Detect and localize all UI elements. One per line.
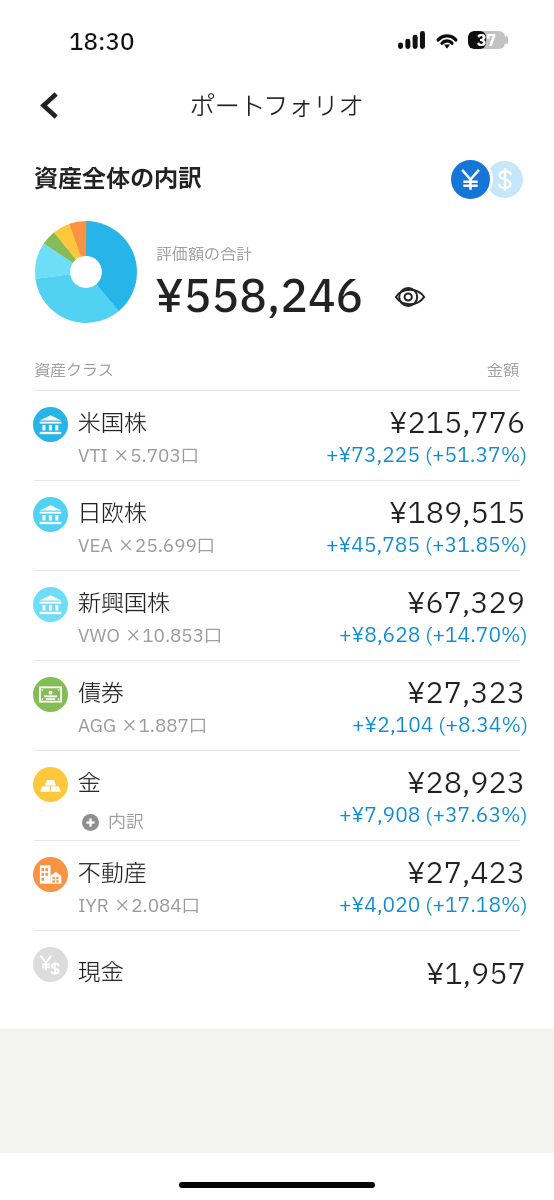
staticText: 資産クラス	[34, 359, 114, 383]
staticText: ¥189,515	[389, 492, 526, 535]
staticText: 評価額の合計	[156, 243, 253, 267]
staticText: 現金	[78, 956, 124, 990]
button[interactable]: 米国株	[0, 391, 554, 480]
button[interactable]: Toggle balance visibility	[390, 282, 430, 312]
staticText: ¥215,776	[389, 402, 526, 445]
button[interactable]: 債券	[0, 661, 554, 750]
staticText: +¥4,020 (+17.18%)	[339, 891, 528, 921]
staticText: ¥67,329	[407, 582, 526, 625]
staticText: ポートフォリオ	[190, 89, 364, 126]
button[interactable]: 不動産	[0, 841, 554, 930]
staticText: +¥8,628 (+14.70%)	[339, 621, 528, 651]
staticText: 内訳	[108, 809, 144, 836]
staticText: 米国株	[78, 407, 147, 441]
staticText: +¥2,104 (+8.34%)	[352, 711, 528, 741]
staticText: ¥27,423	[407, 852, 526, 895]
staticText: IYR ×2.084口	[78, 893, 200, 920]
staticText: 債券	[78, 677, 124, 711]
button[interactable]: Switch to JPY	[451, 160, 490, 199]
staticText: 資産全体の内訳	[34, 162, 202, 198]
staticText: VWO ×10.853口	[78, 623, 223, 650]
staticText: 18:30	[69, 26, 135, 60]
staticText: +¥45,785 (+31.85%)	[326, 531, 528, 561]
button[interactable]: 金	[0, 751, 554, 840]
button[interactable]: Back	[26, 82, 72, 128]
staticText: 日欧株	[78, 497, 147, 531]
staticText: ¥27,323	[407, 672, 526, 715]
staticText: AGG ×1.887口	[78, 713, 207, 740]
staticText: ¥558,246	[155, 265, 364, 331]
staticText: 37	[477, 30, 496, 48]
button[interactable]: 現金	[0, 931, 554, 1020]
staticText: +¥7,908 (+37.63%)	[339, 801, 528, 831]
staticText: 新興国株	[78, 587, 170, 621]
staticText: 不動産	[78, 857, 147, 891]
button[interactable]: 日欧株	[0, 481, 554, 570]
staticText: VTI ×5.703口	[78, 443, 199, 470]
staticText: VEA ×25.699口	[78, 533, 215, 560]
staticText: +¥73,225 (+51.37%)	[326, 441, 528, 471]
staticText: 金	[78, 767, 101, 801]
button[interactable]: Switch to USD	[486, 161, 523, 198]
staticText: 金額	[487, 359, 520, 383]
button[interactable]: 新興国株	[0, 571, 554, 660]
staticText: ¥1,957	[426, 953, 526, 996]
staticText: ¥28,923	[407, 762, 526, 805]
